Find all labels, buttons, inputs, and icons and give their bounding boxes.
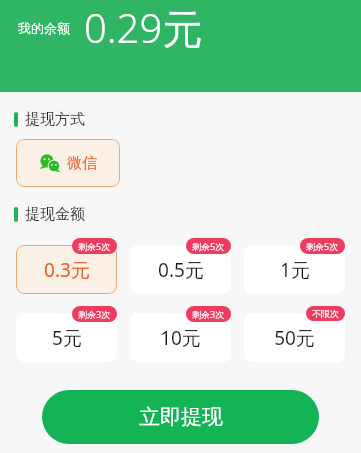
button[interactable]: WeChat <box>16 139 120 187</box>
staticText: 5元 <box>52 325 82 351</box>
button[interactable]: 1元 <box>244 245 345 294</box>
other: WeChat <box>39 152 61 174</box>
staticText: 提现方式 <box>25 110 85 129</box>
staticText: 我的余额 <box>18 20 70 36</box>
staticText: 提现金额 <box>25 205 85 224</box>
staticText: 剩余5次 <box>306 240 339 252</box>
button[interactable]: 5元 <box>16 313 117 362</box>
staticText: 0.29元 <box>84 0 203 55</box>
staticText: 不限次 <box>312 308 339 319</box>
button[interactable]: 50元 <box>244 313 345 362</box>
staticText: 0.3元 <box>44 257 90 283</box>
button[interactable]: 0.3元 <box>16 245 117 294</box>
staticText: 剩余5次 <box>78 240 111 252</box>
button[interactable]: 立即提现 <box>42 390 319 444</box>
staticText: 剩余5次 <box>192 240 225 252</box>
staticText: 10元 <box>160 325 201 351</box>
button[interactable]: 10元 <box>130 313 231 362</box>
button[interactable]: 0.5元 <box>130 245 231 294</box>
staticText: 1元 <box>280 257 310 283</box>
staticText: 剩余3次 <box>78 308 111 320</box>
staticText: 微信 <box>67 154 97 173</box>
staticText: 50元 <box>274 325 315 351</box>
staticText: 剩余3次 <box>192 308 225 320</box>
staticText: 立即提现 <box>139 404 223 430</box>
staticText: 0.5元 <box>158 257 204 283</box>
